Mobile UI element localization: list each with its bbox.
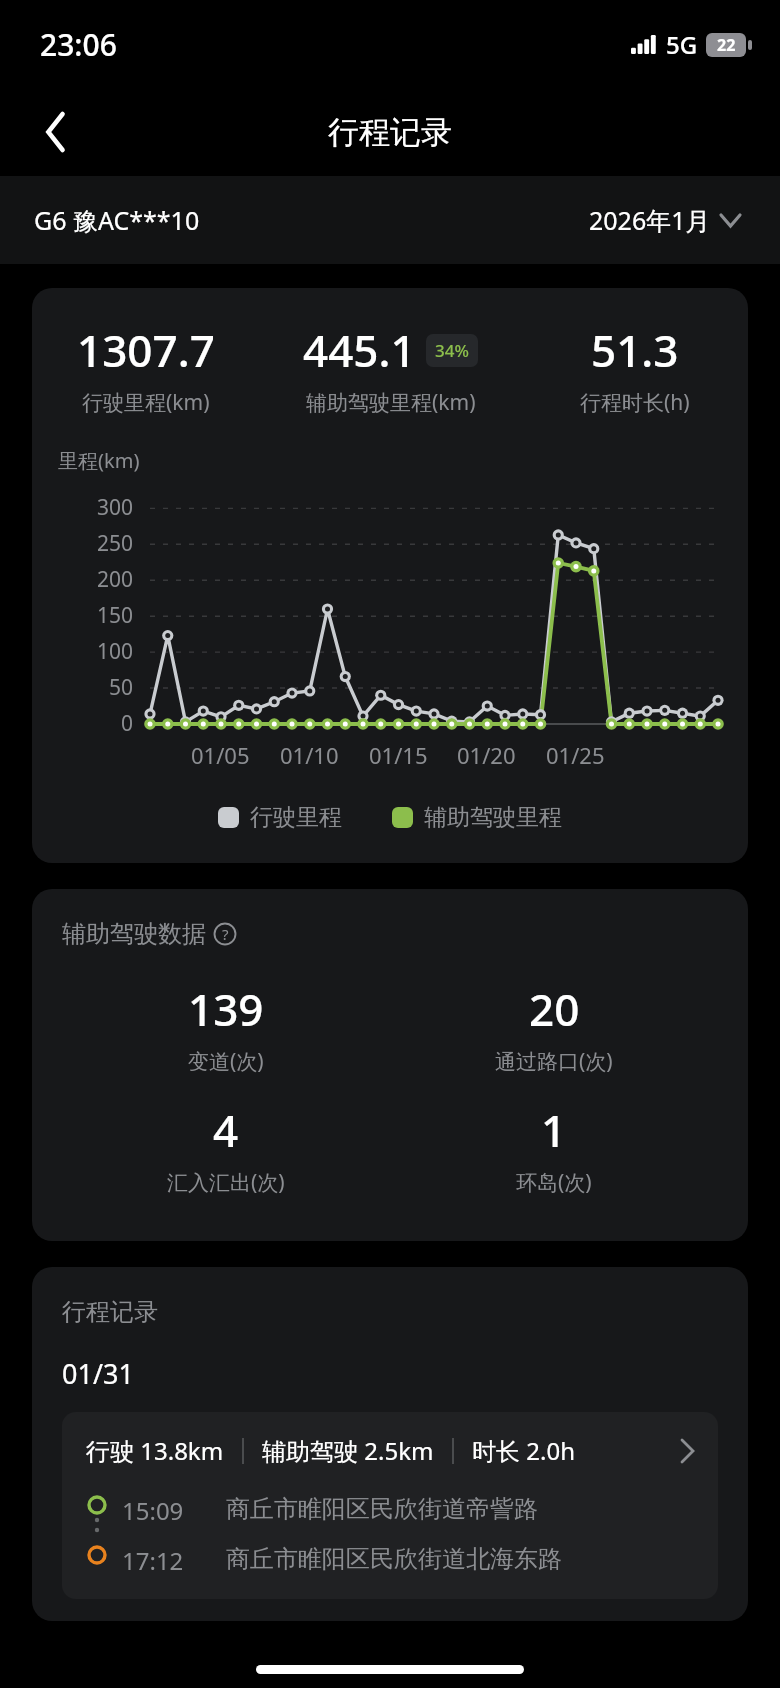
staticText: 行驶里程 <box>250 803 342 832</box>
button[interactable]: 行驶 13.8km <box>62 1412 718 1599</box>
staticText: 通过路口(次) <box>495 1047 613 1076</box>
staticText: 34% <box>435 339 469 362</box>
staticText: 行程记录 <box>328 113 452 152</box>
staticText: 445.1 <box>303 320 416 380</box>
button[interactable]: Back <box>26 102 86 162</box>
staticText: 01/10 <box>280 740 339 770</box>
button[interactable]: Help <box>213 922 237 946</box>
staticText: 辅助驾驶里程(km) <box>306 388 476 417</box>
staticText: 商丘市睢阳区民欣街道北海东路 <box>226 1544 562 1574</box>
staticText: 17:12 <box>122 1544 214 1577</box>
staticText: 01/15 <box>369 740 428 770</box>
staticText: 01/25 <box>546 740 605 770</box>
button[interactable]: 行驶里程 <box>215 800 345 835</box>
staticText: 1307.7 <box>77 320 215 380</box>
staticText: G6 豫AC***10 <box>34 203 200 237</box>
staticText: 139 <box>188 979 264 1039</box>
staticText: 200 <box>97 565 134 594</box>
staticText: 01/20 <box>457 740 516 770</box>
staticText: 汇入汇出(次) <box>167 1168 285 1197</box>
staticText: 51.3 <box>591 320 679 380</box>
staticText: 20 <box>529 979 580 1039</box>
button[interactable]: 辅助驾驶里程 <box>389 800 565 835</box>
staticText: 2026年1月 <box>589 203 711 237</box>
staticText: 行程记录 <box>62 1297 158 1327</box>
staticText: 4 <box>213 1100 239 1160</box>
staticText: 50 <box>109 673 134 702</box>
staticText: 商丘市睢阳区民欣街道帝訾路 <box>226 1494 538 1524</box>
staticText: 5G <box>666 28 698 61</box>
staticText: 1 <box>541 1100 567 1160</box>
staticText: 辅助驾驶数据 <box>62 919 206 949</box>
staticText: 变道(次) <box>188 1047 264 1076</box>
staticText: 15:09 <box>122 1494 214 1527</box>
staticText: 250 <box>97 529 134 558</box>
staticText: 时长 2.0h <box>472 1434 575 1467</box>
staticText: 里程(km) <box>58 447 140 474</box>
button[interactable]: 2026年1月 <box>583 197 746 243</box>
staticText: 行程时长(h) <box>580 388 690 417</box>
staticText: 22 <box>717 34 736 56</box>
staticText: 辅助驾驶 2.5km <box>262 1434 434 1467</box>
staticText: 环岛(次) <box>516 1168 592 1197</box>
staticText: 100 <box>97 637 134 666</box>
staticText: 辅助驾驶里程 <box>424 803 562 832</box>
staticText: 行驶 13.8km <box>86 1434 224 1467</box>
staticText: 01/05 <box>191 740 250 770</box>
staticText: 01/31 <box>62 1355 134 1392</box>
staticText: 0 <box>121 709 134 738</box>
staticText: 300 <box>97 493 134 522</box>
staticText: 23:06 <box>40 24 117 65</box>
staticText: 150 <box>97 601 134 630</box>
staticText: 行驶里程(km) <box>82 388 210 417</box>
staticText: ? <box>222 924 229 944</box>
